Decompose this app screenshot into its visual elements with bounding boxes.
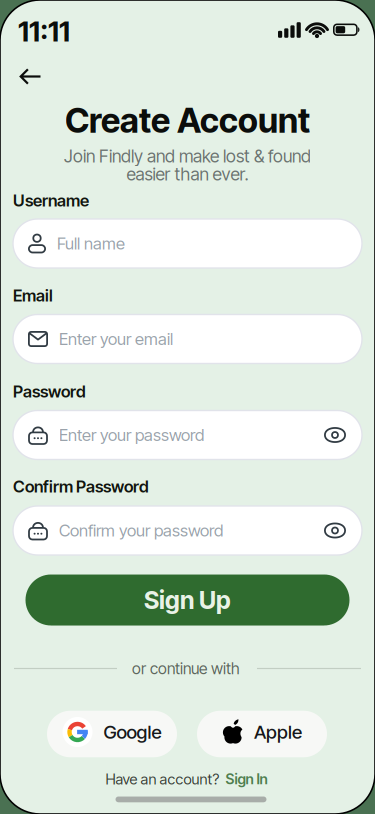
button[interactable]: Show password (324, 522, 346, 538)
staticText: or continue with (132, 659, 240, 678)
staticText: Google (103, 721, 161, 743)
staticText: Have an account? (105, 770, 219, 788)
staticText: Sign In (225, 770, 267, 788)
staticText: Full name (57, 233, 125, 254)
staticText: Enter your email (59, 329, 173, 349)
staticText: Create Account (65, 100, 310, 141)
button[interactable]: Show password (324, 427, 346, 443)
button[interactable]: Sign Up (25, 574, 349, 625)
staticText: 11:11 (18, 15, 70, 48)
staticText: Confirm Password (13, 476, 149, 496)
staticText: easier than ever. (126, 163, 248, 185)
staticText: Join Findly and make lost & found (64, 145, 311, 167)
staticText: Enter your password (59, 425, 204, 445)
button[interactable]: Sign In (225, 770, 267, 788)
button[interactable]: Apple (197, 711, 327, 757)
staticText: Password (13, 381, 86, 401)
staticText: Apple (254, 721, 302, 743)
staticText: Sign Up (144, 585, 231, 615)
staticText: Email (13, 285, 53, 305)
button[interactable]: Google (47, 711, 177, 757)
staticText: Confirm your password (59, 520, 223, 541)
staticText: Username (13, 190, 89, 210)
button[interactable]: Back (15, 63, 45, 89)
